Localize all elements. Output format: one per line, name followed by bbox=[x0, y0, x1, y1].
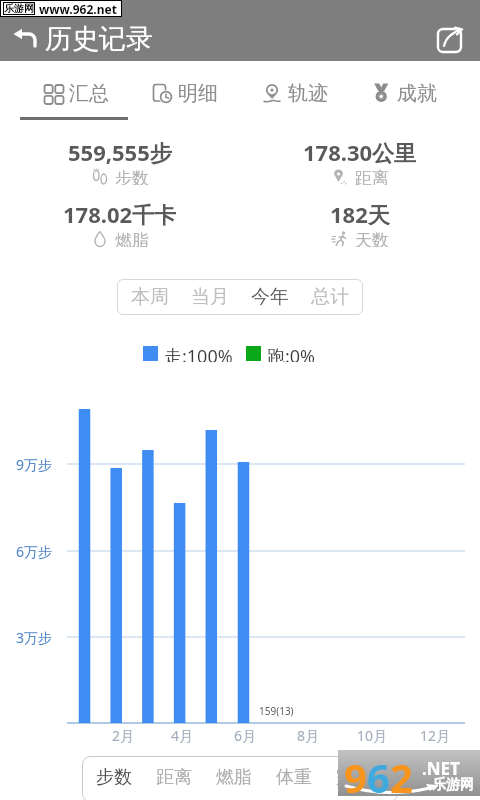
staticText: 当月 bbox=[191, 285, 229, 309]
staticText: 182天 bbox=[330, 199, 390, 229]
staticText: 天数 bbox=[355, 230, 389, 247]
staticText: 9万步 bbox=[16, 455, 53, 474]
button[interactable]: 总计 bbox=[311, 285, 349, 309]
staticText: 12月 bbox=[420, 726, 451, 745]
staticText: 成就 bbox=[397, 81, 437, 106]
staticText: 8月 bbox=[297, 726, 320, 745]
staticText: 178.30公里 bbox=[303, 137, 417, 167]
staticText: 4月 bbox=[171, 726, 194, 745]
staticText: 10月 bbox=[357, 726, 388, 745]
button[interactable] bbox=[12, 26, 38, 52]
staticText: 步数 bbox=[115, 168, 149, 185]
button[interactable]: 轨迹 bbox=[262, 81, 328, 106]
staticText: 2月 bbox=[112, 726, 135, 745]
staticText: 6月 bbox=[234, 726, 257, 745]
staticText: 跑:0% bbox=[267, 344, 316, 362]
staticText: 体重 bbox=[276, 766, 312, 789]
button[interactable]: 完成率 bbox=[336, 766, 390, 789]
staticText: 汇总 bbox=[69, 81, 109, 106]
staticText: 6 bbox=[367, 750, 390, 796]
staticText: 今年 bbox=[251, 285, 289, 309]
staticText: 历史记录 bbox=[45, 22, 153, 56]
button[interactable]: 本周 bbox=[131, 285, 169, 309]
staticText: 178.02千卡 bbox=[63, 199, 177, 229]
staticText: 走:100% bbox=[164, 344, 233, 362]
staticText: www.962.net bbox=[39, 1, 117, 17]
staticText: 距离 bbox=[156, 766, 192, 789]
staticText: 2 bbox=[390, 750, 413, 796]
button[interactable]: 明细 bbox=[152, 81, 218, 106]
button[interactable]: 距离 bbox=[156, 766, 192, 789]
staticText: 3万步 bbox=[16, 628, 53, 647]
staticText: 559,555步 bbox=[68, 137, 172, 167]
staticText: 本周 bbox=[131, 285, 169, 309]
button[interactable]: 燃脂 bbox=[216, 766, 252, 789]
button[interactable] bbox=[436, 24, 466, 54]
staticText: 乐游网 bbox=[432, 776, 474, 794]
staticText: 159(13) bbox=[259, 704, 294, 718]
staticText: 明细 bbox=[178, 81, 218, 106]
button[interactable]: 今年 bbox=[251, 285, 289, 309]
staticText: 9 bbox=[344, 750, 367, 796]
button[interactable]: 体重 bbox=[276, 766, 312, 789]
button[interactable]: 成就 bbox=[371, 81, 437, 106]
staticText: 距离 bbox=[355, 168, 389, 185]
staticText: 乐游网 bbox=[4, 2, 34, 15]
button[interactable]: 汇总 bbox=[43, 81, 109, 106]
button[interactable]: 当月 bbox=[191, 285, 229, 309]
staticText: 完成率 bbox=[336, 766, 390, 789]
staticText: 轨迹 bbox=[288, 81, 328, 106]
staticText: 步数 bbox=[96, 766, 132, 789]
staticText: .NET bbox=[422, 757, 460, 780]
staticText: 6万步 bbox=[16, 542, 53, 561]
staticText: 燃脂 bbox=[115, 230, 149, 247]
button[interactable]: 步数 bbox=[96, 766, 132, 789]
staticText: 总计 bbox=[311, 285, 349, 309]
staticText: 燃脂 bbox=[216, 766, 252, 789]
